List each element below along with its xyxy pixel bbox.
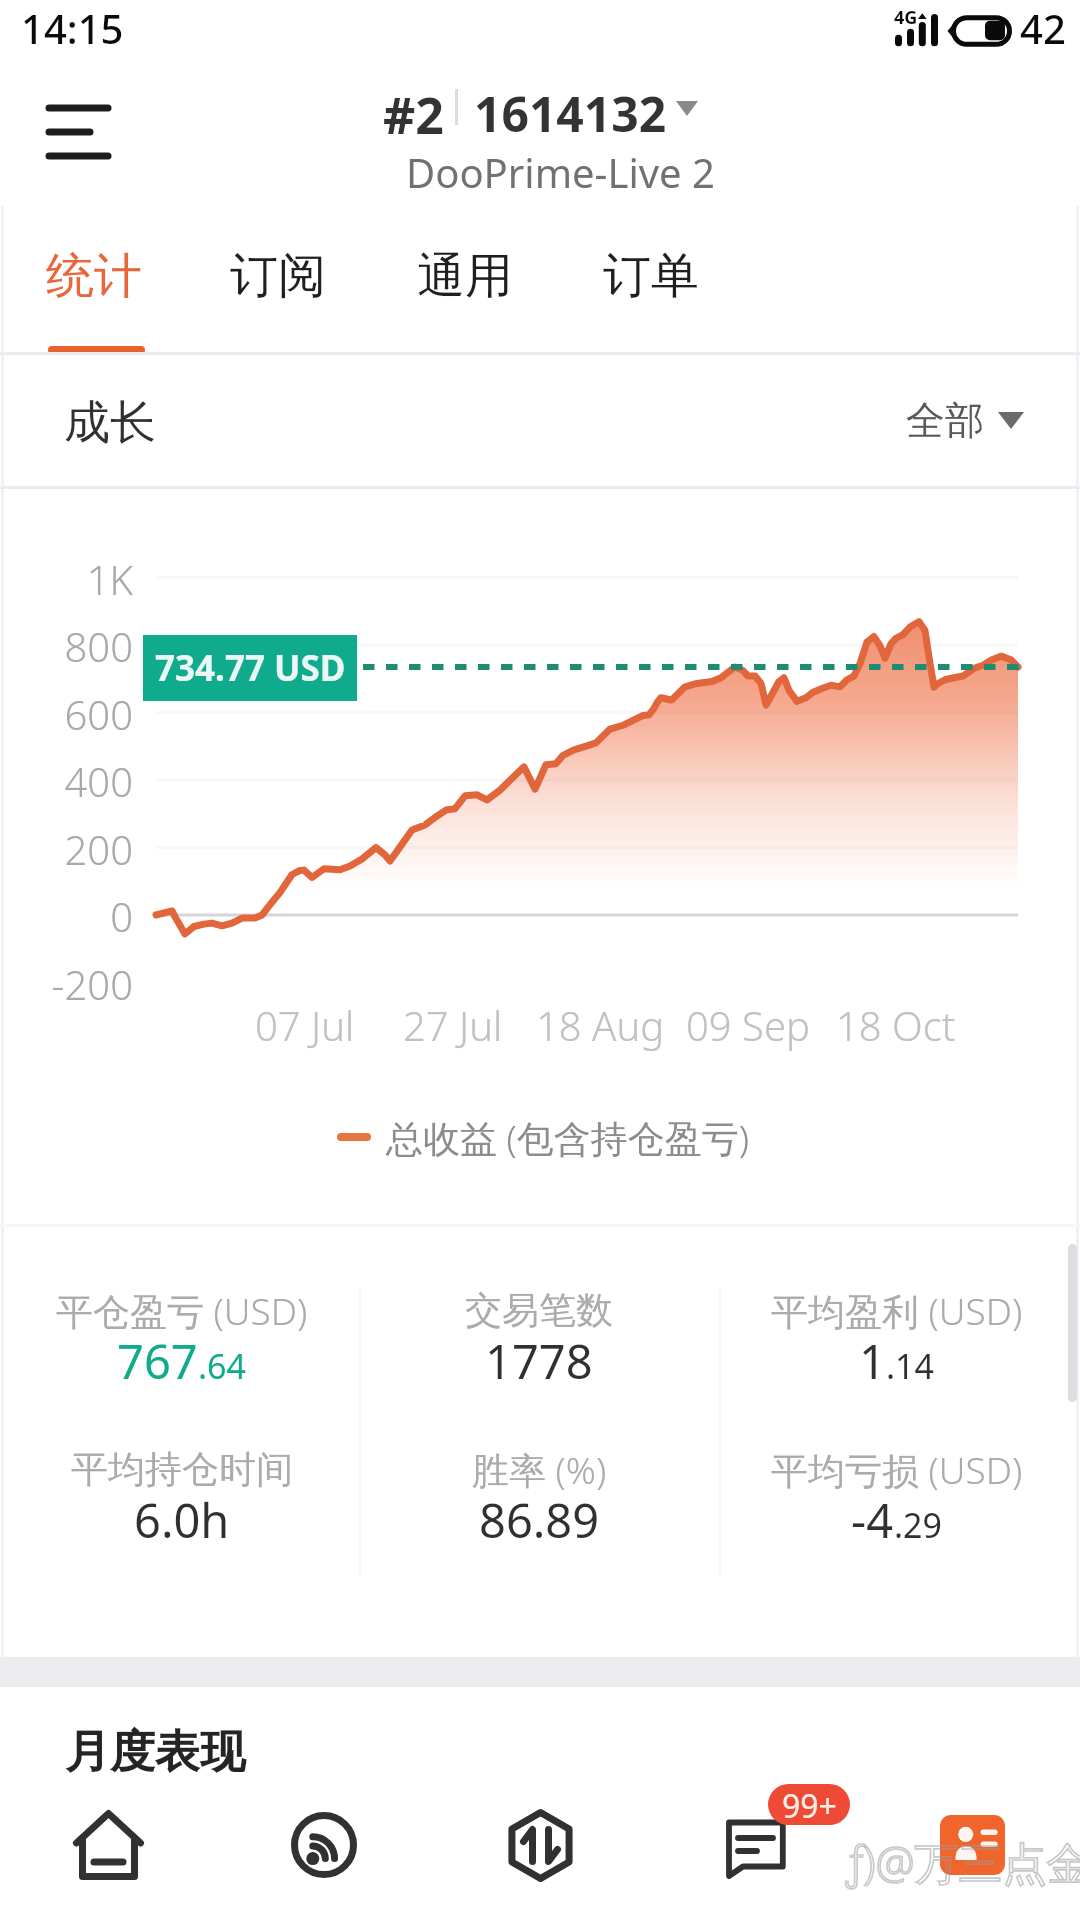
- button[interactable]: Home: [0, 1770, 216, 1920]
- staticText: 14:15: [21, 1, 124, 55]
- staticText: 600: [0, 687, 133, 741]
- staticText: 07 Jul: [255, 998, 355, 1052]
- button[interactable]: 订阅: [211, 216, 345, 336]
- staticText: 767: [117, 1329, 198, 1391]
- staticText: 平均亏损 (USD): [771, 1444, 1023, 1495]
- staticText: 400: [0, 754, 133, 808]
- staticText: -200: [0, 957, 133, 1011]
- staticText: 全部: [906, 396, 984, 445]
- staticText: 1778: [485, 1329, 593, 1391]
- staticText: 27 Jul: [403, 998, 503, 1052]
- button[interactable]: Profile: [864, 1770, 1080, 1920]
- staticText: 734.77 USD: [155, 644, 346, 692]
- staticText: 总收益 (包含持仓盈亏): [386, 1112, 750, 1163]
- staticText: 86.89: [479, 1488, 600, 1550]
- staticText: 18 Oct: [836, 998, 956, 1052]
- staticText: 6.0h: [134, 1488, 230, 1550]
- staticText: DooPrime-Live 2: [406, 145, 715, 199]
- staticText: 1K: [0, 552, 133, 606]
- staticText: 18 Aug: [536, 998, 665, 1052]
- staticText: 200: [0, 822, 133, 876]
- staticText: 胜率 (%): [472, 1444, 607, 1495]
- staticText: 平均持仓时间: [71, 1446, 293, 1493]
- staticText: ƒ)@万三点金: [846, 1832, 1080, 1892]
- button[interactable]: 订单: [584, 216, 718, 336]
- staticText: 0: [0, 889, 133, 943]
- button[interactable]: Menu: [24, 82, 134, 182]
- staticText: .14: [886, 1343, 935, 1389]
- staticText: #2: [383, 81, 444, 149]
- staticText: .29: [894, 1502, 943, 1548]
- staticText: 通用: [417, 246, 513, 306]
- staticText: 平均盈利 (USD): [771, 1285, 1023, 1336]
- staticText: -4: [851, 1488, 894, 1550]
- staticText: 统计: [46, 246, 142, 306]
- button[interactable]: Trade: [432, 1770, 648, 1920]
- staticText: 交易笔数: [465, 1287, 613, 1334]
- staticText: 800: [0, 619, 133, 673]
- staticText: 成长: [64, 394, 156, 452]
- staticText: 99+: [782, 1784, 837, 1825]
- staticText: 订阅: [230, 246, 326, 306]
- staticText: 平仓盈亏 (USD): [56, 1285, 308, 1336]
- button[interactable]: Messages: [648, 1770, 864, 1920]
- staticText: 1614132: [474, 81, 667, 146]
- button[interactable]: #2: [370, 76, 710, 188]
- button[interactable]: Signals: [216, 1770, 432, 1920]
- staticText: 42: [1020, 1, 1066, 55]
- staticText: 月度表现: [65, 1724, 245, 1781]
- button[interactable]: 全部: [906, 392, 1036, 448]
- staticText: .64: [198, 1343, 247, 1389]
- staticText: 4G: [894, 5, 918, 30]
- staticText: 1: [859, 1329, 886, 1391]
- button[interactable]: 统计: [27, 216, 161, 336]
- staticText: 09 Sep: [686, 998, 810, 1052]
- button[interactable]: 通用: [398, 216, 532, 336]
- staticText: 订单: [603, 246, 699, 306]
